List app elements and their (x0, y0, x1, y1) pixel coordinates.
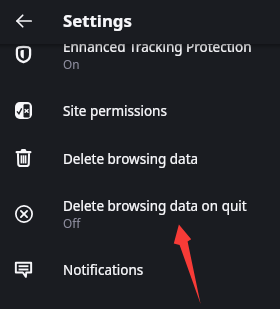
button[interactable]: Site permissions (0, 87, 280, 135)
staticText: Settings (63, 9, 132, 32)
button[interactable]: Delete browsing data on quit (0, 183, 280, 246)
staticText: On (63, 56, 80, 72)
staticText: Site permissions (63, 102, 167, 120)
staticText: Delete browsing data (63, 150, 199, 168)
staticText: Off (63, 215, 81, 231)
button[interactable]: Notifications (0, 246, 280, 294)
staticText: Enhanced Tracking Protection (63, 38, 252, 56)
staticText: Notifications (63, 261, 144, 279)
button[interactable]: Delete browsing data (0, 135, 280, 183)
button[interactable]: Enhanced Tracking Protection (0, 24, 280, 87)
staticText: Delete browsing data on quit (63, 197, 247, 215)
button[interactable]: Back (0, 0, 47, 41)
